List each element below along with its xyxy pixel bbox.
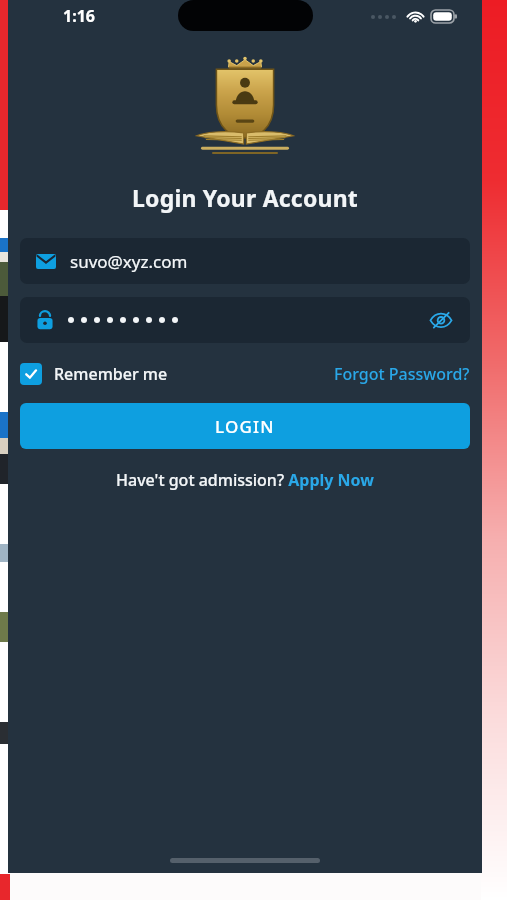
staticText: Have't got admission? Apply Now [116,469,374,491]
staticText: suvo@xyz.com [70,250,188,273]
staticText: Remember me [54,363,168,385]
staticText: LOGIN [215,415,275,438]
button[interactable]: Show password [426,305,456,335]
staticText: 1:16 [63,5,95,27]
button[interactable]: Remember me [20,363,168,385]
staticText: Login Your Account [8,182,482,213]
button[interactable]: Forgot Password? [334,363,470,385]
button[interactable]: suvo@xyz.com [20,238,470,284]
button[interactable]: Show password [20,297,470,343]
staticText: Forgot Password? [334,363,470,385]
button[interactable]: Have't got admission? Apply Now [8,469,482,491]
button[interactable]: LOGIN [20,403,470,449]
